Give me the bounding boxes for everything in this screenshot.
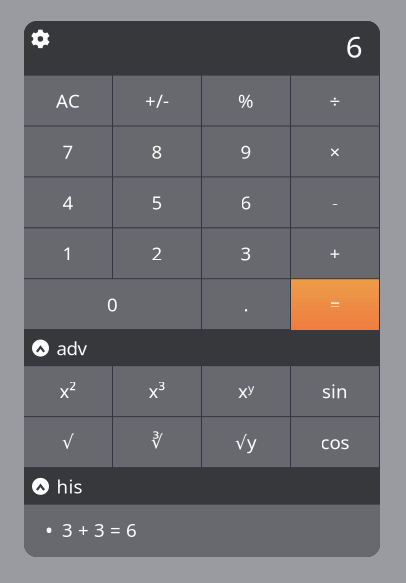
button[interactable]: Settings bbox=[25, 23, 56, 54]
staticText: 1 bbox=[62, 241, 73, 266]
staticText: 6 bbox=[346, 27, 363, 66]
staticText: 6 bbox=[240, 190, 251, 215]
button[interactable]: 4 bbox=[24, 177, 112, 227]
staticText: 2 bbox=[151, 241, 162, 266]
button[interactable]: - bbox=[291, 177, 379, 227]
button[interactable]: 2 bbox=[113, 228, 201, 278]
staticText: sin bbox=[322, 379, 348, 403]
staticText: x³ bbox=[148, 379, 165, 403]
staticText: 3 + 3 = 6 bbox=[62, 517, 137, 542]
button[interactable]: x³ bbox=[113, 366, 201, 416]
button[interactable]: + bbox=[291, 228, 379, 278]
staticText: 8 bbox=[151, 139, 162, 164]
button[interactable]: 8 bbox=[113, 126, 201, 176]
staticText: • bbox=[45, 516, 53, 544]
button[interactable]: xʸ bbox=[202, 366, 290, 416]
staticText: AC bbox=[56, 88, 80, 113]
button[interactable]: √y bbox=[202, 417, 290, 467]
staticText: 0 bbox=[107, 292, 118, 317]
staticText: 4 bbox=[62, 190, 73, 215]
button[interactable]: ∛ bbox=[113, 417, 201, 467]
staticText: +/- bbox=[145, 88, 169, 113]
button[interactable]: 7 bbox=[24, 126, 112, 176]
button[interactable]: 3 bbox=[202, 228, 290, 278]
staticText: + bbox=[329, 241, 340, 266]
staticText: xʸ bbox=[238, 379, 254, 403]
staticText: cos bbox=[320, 430, 349, 454]
button[interactable]: +/- bbox=[113, 76, 201, 125]
button[interactable]: 5 bbox=[113, 177, 201, 227]
button[interactable]: x² bbox=[24, 366, 112, 416]
staticText: x² bbox=[59, 379, 76, 403]
button[interactable]: cos bbox=[291, 417, 379, 467]
staticText: √y bbox=[235, 430, 257, 454]
staticText: ÷ bbox=[329, 88, 340, 113]
staticText: . bbox=[243, 292, 248, 317]
button[interactable]: 9 bbox=[202, 126, 290, 176]
button[interactable]: % bbox=[202, 76, 290, 125]
button[interactable]: √ bbox=[24, 417, 112, 467]
staticText: ∛ bbox=[151, 431, 163, 453]
button[interactable]: sin bbox=[291, 366, 379, 416]
staticText: - bbox=[332, 190, 338, 215]
staticText: √ bbox=[62, 431, 74, 453]
staticText: 7 bbox=[62, 139, 73, 164]
staticText: adv bbox=[56, 336, 86, 360]
button[interactable]: ÷ bbox=[291, 76, 379, 125]
staticText: × bbox=[329, 139, 340, 164]
staticText: 9 bbox=[240, 139, 251, 164]
staticText: % bbox=[238, 88, 254, 113]
button[interactable]: × bbox=[291, 126, 379, 176]
button[interactable]: = bbox=[291, 279, 379, 329]
button[interactable]: 0 bbox=[24, 279, 201, 329]
button[interactable]: 6 bbox=[202, 177, 290, 227]
staticText: 3 bbox=[240, 241, 251, 266]
staticText: = bbox=[329, 292, 340, 317]
button[interactable]: . bbox=[202, 279, 290, 329]
staticText: his bbox=[56, 474, 82, 499]
button[interactable]: adv bbox=[24, 330, 380, 366]
staticText: 5 bbox=[151, 190, 162, 215]
button[interactable]: 1 bbox=[24, 228, 112, 278]
button[interactable]: AC bbox=[24, 76, 112, 125]
button[interactable]: his bbox=[24, 468, 380, 505]
